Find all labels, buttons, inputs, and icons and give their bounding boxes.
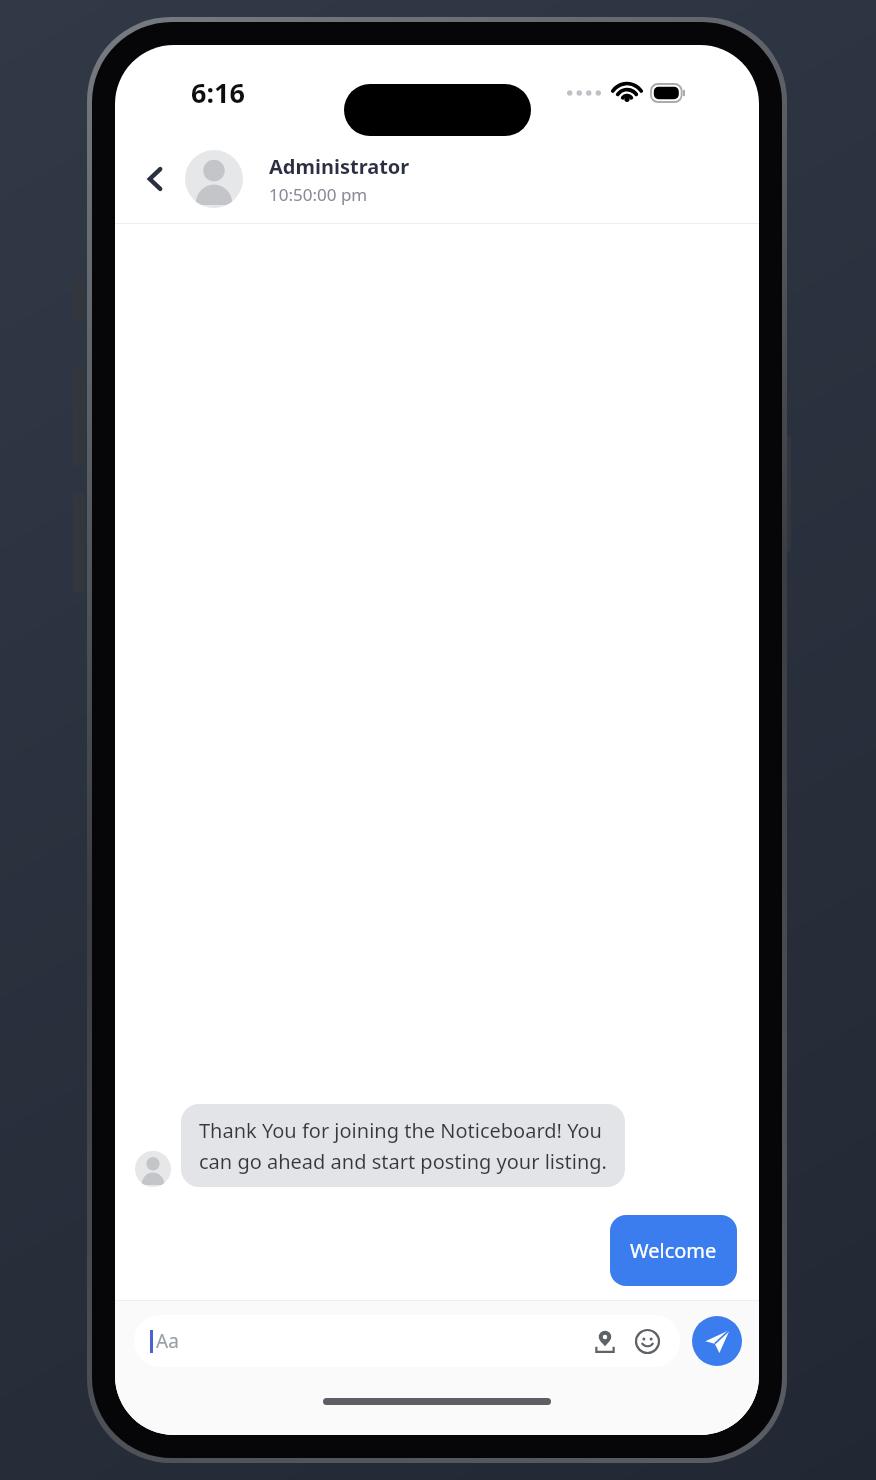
- staticText: Welcome: [630, 1237, 717, 1264]
- button[interactable]: Welcome: [610, 1215, 737, 1286]
- staticText: Aa: [156, 1328, 179, 1354]
- button[interactable]: Send: [692, 1316, 742, 1366]
- button[interactable]: Share location: [588, 1324, 622, 1358]
- button[interactable]: Back: [131, 155, 179, 203]
- staticText: Thank You for joining the Noticeboard! Y…: [199, 1117, 607, 1174]
- button[interactable]: Aa: [134, 1315, 680, 1367]
- staticText: 10:50:00 pm: [269, 183, 368, 206]
- staticText: 6:16: [191, 74, 245, 111]
- button[interactable]: Thank You for joining the Noticeboard! Y…: [181, 1104, 625, 1187]
- button[interactable]: Emoji: [630, 1324, 664, 1358]
- staticText: Administrator: [269, 153, 410, 180]
